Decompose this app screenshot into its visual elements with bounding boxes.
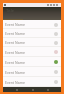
staticText: Title [6,8,14,13]
staticText: Event Name [5,80,25,85]
button[interactable]: Event Name [3,20,61,29]
button[interactable]: Tab two [23,13,42,20]
button[interactable]: Tab three [42,13,61,20]
button[interactable]: Nav [45,87,50,92]
staticText: Event Name [5,50,25,55]
button[interactable]: Event Name [3,38,61,47]
staticText: Event Name [5,70,25,75]
staticText: Event Name [5,40,25,45]
button[interactable]: Nav [14,87,19,92]
staticText: Event Name [5,22,25,27]
button[interactable]: Nav [30,87,35,92]
staticText: Event Name [5,60,25,65]
button[interactable]: Event Name [3,29,61,38]
button[interactable]: Tab one [3,13,23,20]
button[interactable]: Event Name [3,57,61,67]
button[interactable]: Event Name [3,47,61,57]
button[interactable]: Title [3,7,61,13]
button[interactable]: Event Name [3,77,61,87]
button[interactable]: Event Name [3,67,61,77]
staticText: Event Name [5,31,25,36]
